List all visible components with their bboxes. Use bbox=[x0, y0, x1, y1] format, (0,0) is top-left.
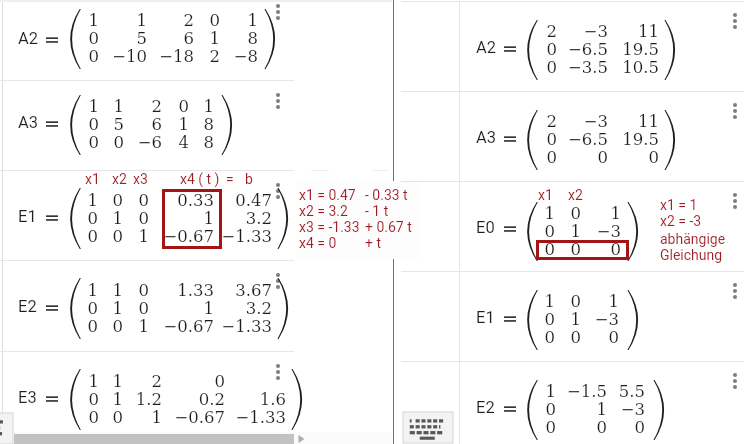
staticText: 1 bbox=[3, 372, 123, 397]
staticText: 1 bbox=[0, 281, 98, 306]
button[interactable]: More options for E2 bbox=[725, 369, 744, 395]
staticText: 0 bbox=[105, 372, 225, 397]
staticText: A3 bbox=[476, 128, 516, 153]
staticText: 3.67 bbox=[152, 281, 272, 306]
staticText: −3.5 bbox=[488, 58, 608, 83]
staticText: −6.5 bbox=[488, 40, 608, 65]
button[interactable]: More options for A2 bbox=[268, 0, 288, 26]
staticText: 6 bbox=[74, 29, 194, 54]
staticText: 0 bbox=[4, 133, 124, 158]
staticText: 8 bbox=[94, 115, 214, 140]
staticText: 0 bbox=[487, 418, 607, 443]
staticText: −1.33 bbox=[152, 227, 272, 252]
staticText: 0 bbox=[100, 11, 220, 36]
staticText: 0 bbox=[0, 133, 99, 158]
staticText: 1.2 bbox=[42, 390, 162, 415]
button[interactable]: More options for E3 bbox=[268, 360, 288, 386]
staticText: 1 bbox=[27, 11, 147, 36]
button[interactable]: More options for E0 bbox=[725, 189, 744, 215]
button[interactable]: Show keyboard bbox=[403, 412, 453, 443]
staticText: 1 bbox=[29, 317, 149, 342]
staticText: 0 bbox=[461, 204, 581, 229]
staticText: 1 bbox=[501, 204, 621, 229]
staticText: 2 bbox=[437, 112, 557, 137]
staticText: −0.67 bbox=[94, 317, 214, 342]
staticText: 0 bbox=[3, 227, 123, 252]
staticText: 3.2 bbox=[152, 299, 272, 324]
button[interactable]: Show keyboard bbox=[0, 413, 13, 444]
staticText: 0 bbox=[525, 418, 645, 443]
button[interactable]: More options for E1 bbox=[268, 179, 288, 205]
staticText: 19.5 bbox=[539, 130, 659, 155]
staticText: 1 bbox=[94, 209, 214, 234]
staticText: 1 bbox=[3, 299, 123, 324]
staticText: x1 = 1 bbox=[660, 197, 730, 218]
staticText: −1.5 bbox=[487, 382, 607, 407]
staticText: x4 ( t ) bbox=[180, 171, 240, 192]
staticText: E3 bbox=[18, 388, 58, 413]
staticText: x1 bbox=[85, 171, 111, 192]
staticText: 0 bbox=[0, 408, 99, 433]
staticText: A3 bbox=[18, 113, 58, 138]
staticText: 1 bbox=[3, 390, 123, 415]
staticText: 0 bbox=[0, 390, 99, 415]
staticText: 1 bbox=[138, 11, 258, 36]
staticText: 0 bbox=[461, 240, 581, 265]
staticText: 2 bbox=[74, 11, 194, 36]
staticText: 0 bbox=[0, 115, 99, 140]
button[interactable]: More options for A3 bbox=[725, 99, 744, 125]
staticText: −3 bbox=[525, 400, 645, 425]
staticText: 0 bbox=[437, 40, 557, 65]
staticText: 2 bbox=[42, 97, 162, 122]
staticText: x2 bbox=[112, 171, 138, 192]
staticText: = bbox=[226, 171, 244, 192]
staticText: + t bbox=[365, 235, 421, 256]
staticText: 1 bbox=[499, 292, 619, 317]
staticText: −3 bbox=[501, 222, 621, 247]
staticText: 11 bbox=[539, 112, 659, 137]
staticText: 0 bbox=[435, 222, 555, 247]
staticText: 0 bbox=[437, 148, 557, 173]
staticText: 5 bbox=[4, 115, 124, 140]
staticText: 8 bbox=[94, 133, 214, 158]
staticText: 0 bbox=[29, 299, 149, 324]
staticText: 1 bbox=[0, 372, 99, 397]
button[interactable]: More options for E2 bbox=[268, 269, 288, 295]
staticText: 1.33 bbox=[94, 281, 214, 306]
staticText: 1 bbox=[435, 292, 555, 317]
staticText: Gleichung bbox=[660, 247, 740, 268]
staticText: 0 bbox=[0, 47, 99, 72]
staticText: 1 bbox=[0, 11, 99, 36]
staticText: 1 bbox=[487, 400, 607, 425]
staticText: 0 bbox=[3, 191, 123, 216]
button[interactable]: More options for E1 bbox=[725, 279, 744, 305]
staticText: 0 bbox=[461, 328, 581, 353]
staticText: 0 bbox=[435, 240, 555, 265]
staticText: −1.33 bbox=[152, 317, 272, 342]
staticText: 0 bbox=[437, 130, 557, 155]
staticText: E0 bbox=[476, 218, 516, 243]
staticText: 1 bbox=[435, 204, 555, 229]
staticText: 2 bbox=[437, 22, 557, 47]
staticText: 1 bbox=[69, 115, 189, 140]
staticText: 1 bbox=[29, 227, 149, 252]
staticText: 11 bbox=[539, 22, 659, 47]
staticText: −18 bbox=[74, 47, 194, 72]
button[interactable]: More options for A2 bbox=[725, 9, 744, 35]
staticText: 0 bbox=[29, 209, 149, 234]
staticText: x1 = 0.47 bbox=[299, 187, 371, 208]
staticText: 1 bbox=[461, 222, 581, 247]
staticText: 0 bbox=[539, 148, 659, 173]
staticText: −8 bbox=[138, 47, 258, 72]
staticText: −3 bbox=[499, 310, 619, 335]
staticText: 8 bbox=[138, 29, 258, 54]
staticText: 0 bbox=[435, 310, 555, 335]
staticText: x2 bbox=[568, 187, 594, 208]
staticText: abhängige bbox=[660, 231, 740, 252]
staticText: 0 bbox=[0, 227, 98, 252]
staticText: 0 bbox=[69, 97, 189, 122]
button[interactable]: More options for A3 bbox=[268, 89, 288, 115]
staticText: −3 bbox=[488, 22, 608, 47]
staticText: 0 bbox=[29, 191, 149, 216]
